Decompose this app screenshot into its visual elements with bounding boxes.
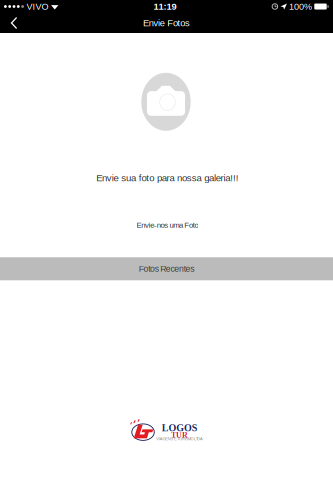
staticText: VIAGENS E TURISMO LTDA (156, 437, 203, 441)
staticText: Fotos Recentes (139, 264, 194, 274)
staticText: Envie sua foto para nossa galeria!!! (96, 173, 239, 183)
staticText: Envie-nos uma Foto (136, 221, 198, 229)
staticText: 100% (289, 1, 312, 11)
button[interactable]: Envie-nos uma Foto (126, 217, 208, 233)
staticText: LOGOS (162, 422, 198, 433)
staticText: VIVO (26, 1, 48, 11)
button[interactable]: Back (0, 13, 29, 33)
staticText: TUR (171, 431, 188, 439)
staticText: 11:19 (154, 1, 177, 12)
staticText: Envie Fotos (143, 18, 190, 28)
